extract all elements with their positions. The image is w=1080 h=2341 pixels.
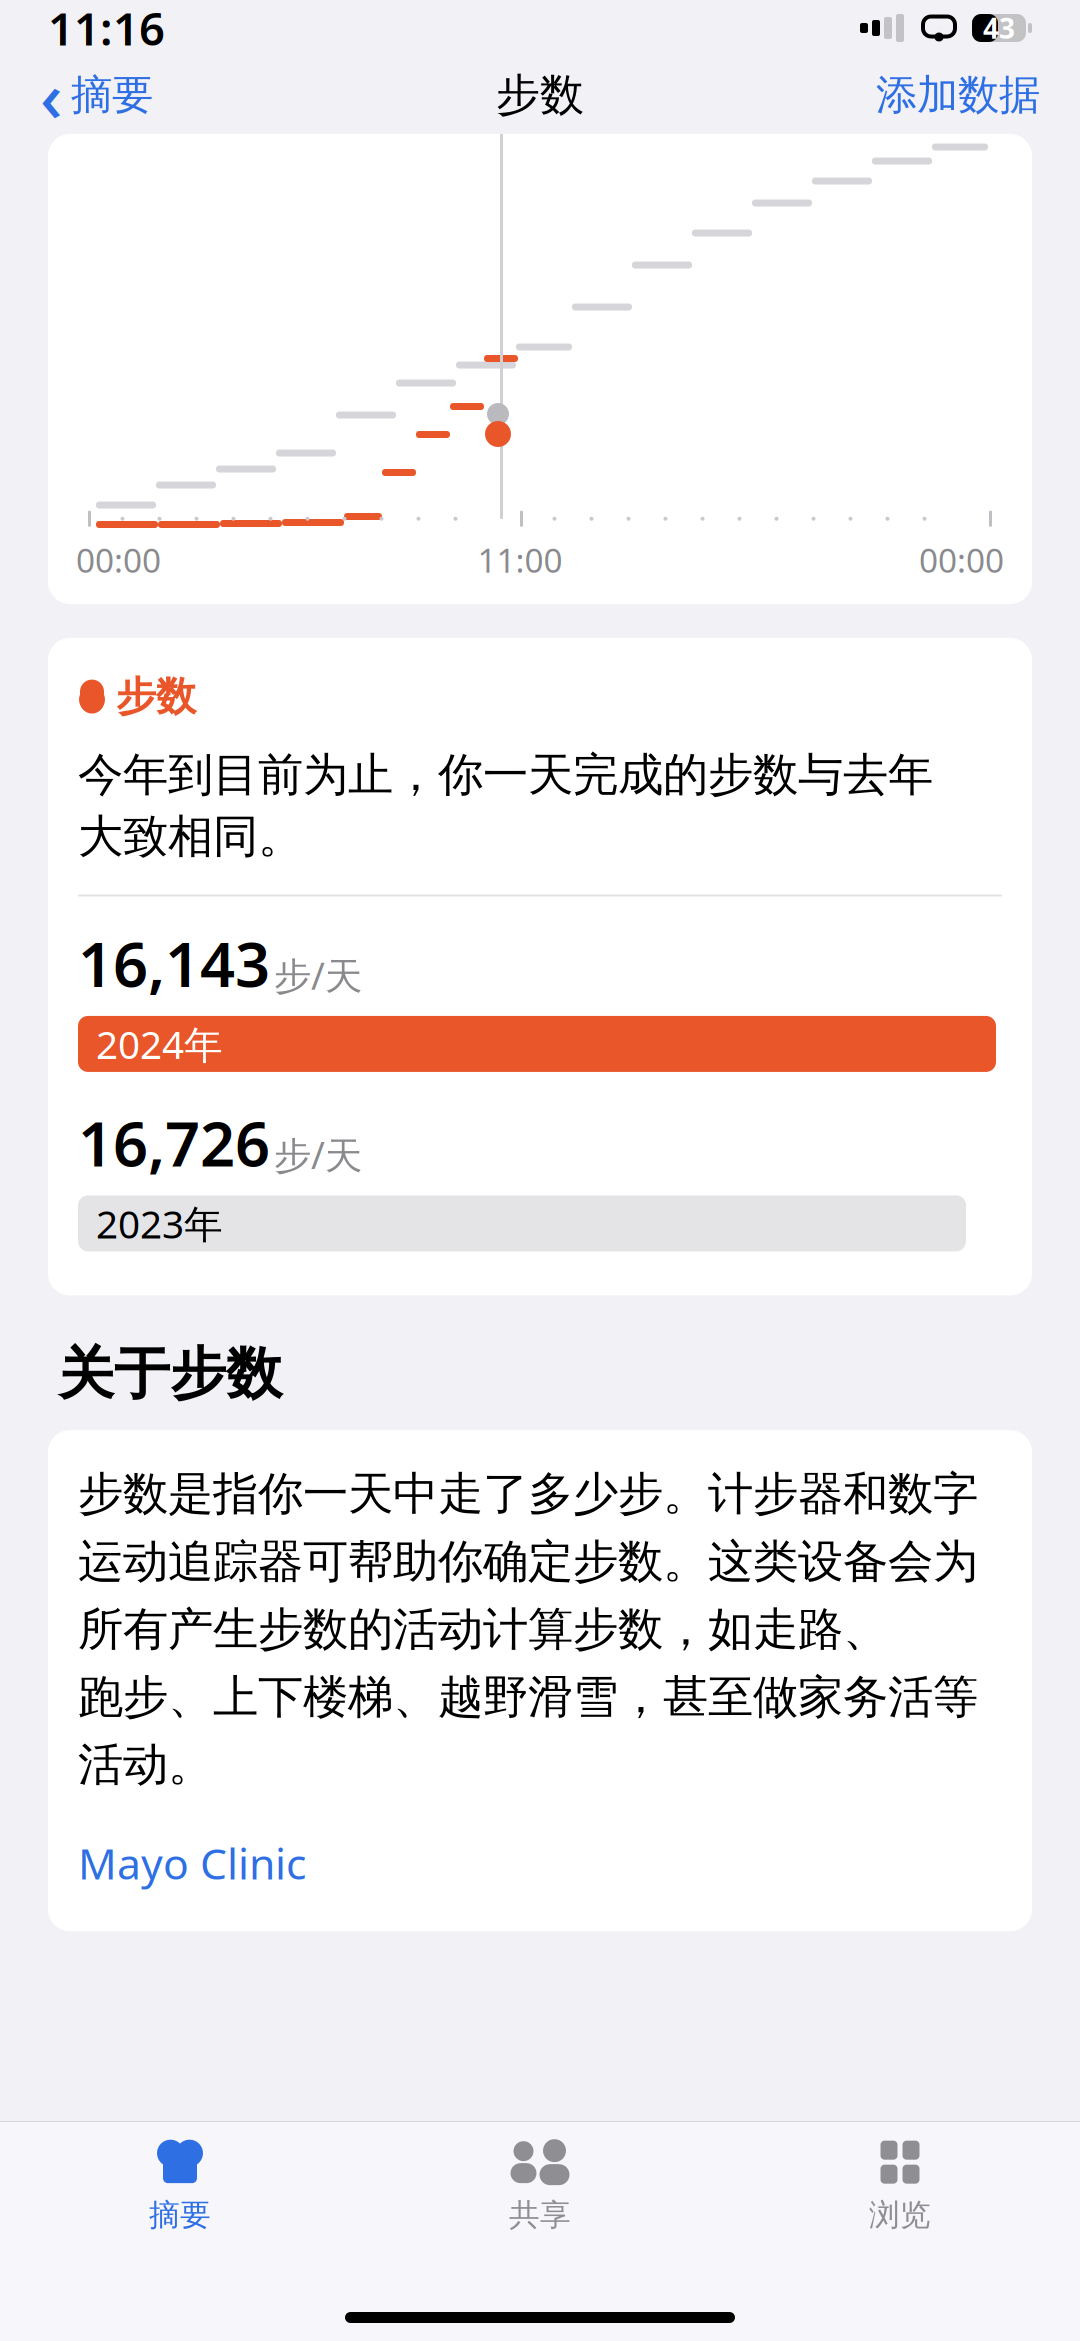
staticText: 00:00	[76, 538, 161, 582]
staticText: 添加数据	[876, 70, 1040, 120]
button[interactable]: Mayo Clinic	[78, 1829, 306, 1897]
staticText: 摘要	[71, 70, 153, 120]
staticText: Mayo Clinic	[78, 1835, 306, 1891]
staticText: 共享	[509, 2196, 571, 2234]
staticText: 所有产生步数的活动计算步数，如走路、	[78, 1601, 888, 1657]
staticText: 跑步、上下楼梯、越野滑雪，甚至做家务活等	[78, 1669, 978, 1725]
staticText: 2024年	[96, 1018, 223, 1070]
button[interactable]: 添加数据	[866, 60, 1050, 130]
staticText: 11:16	[48, 0, 165, 58]
staticText: 16,726	[78, 1102, 270, 1183]
button[interactable]: 浏览	[720, 2120, 1080, 2242]
button[interactable]: ‹	[30, 60, 163, 130]
button[interactable]: 共享	[360, 2120, 720, 2242]
staticText: 步/天	[274, 950, 362, 1000]
staticText: 00:00	[919, 538, 1004, 582]
staticText: 运动追踪器可帮助你确定步数。这类设备会为	[78, 1534, 978, 1590]
staticText: 2023年	[96, 1198, 223, 1249]
staticText: 步数	[496, 68, 584, 122]
staticText: 关于步数	[58, 1339, 282, 1408]
staticText: 步数是指你一天中走了多少步。计步器和数字	[78, 1466, 978, 1522]
staticText: 今年到目前为止，你一天完成的步数与去年	[78, 747, 933, 803]
staticText: 43	[983, 9, 1015, 47]
staticText: 大致相同。	[78, 809, 303, 864]
staticText: 步数	[116, 672, 196, 721]
staticText: 步/天	[274, 1130, 362, 1179]
staticText: 浏览	[869, 2196, 931, 2234]
staticText: 11:00	[477, 538, 562, 582]
staticText: 活动。	[78, 1737, 213, 1793]
button[interactable]: 摘要	[0, 2120, 360, 2242]
staticText: ‹	[40, 49, 63, 141]
staticText: ◞◜	[938, 27, 940, 29]
staticText: 16,143	[78, 922, 270, 1004]
staticText: 摘要	[149, 2196, 211, 2234]
